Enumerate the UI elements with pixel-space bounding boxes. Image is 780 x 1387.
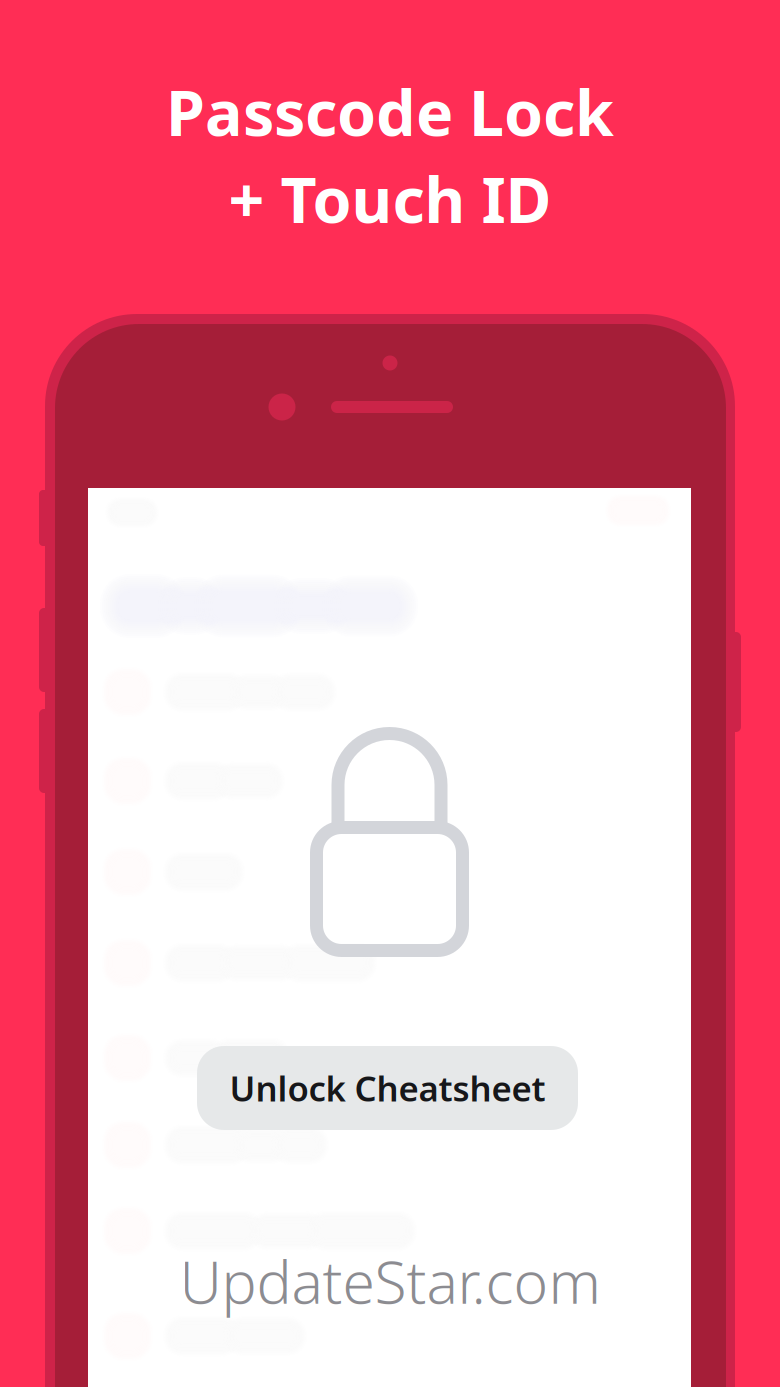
- staticText: Unlock Cheatsheet: [229, 1065, 545, 1111]
- staticText: + Touch ID: [228, 157, 551, 240]
- staticText: UpdateStar.com: [179, 1242, 600, 1320]
- staticText: Passcode Lock: [166, 70, 614, 153]
- button[interactable]: Unlock Cheatsheet: [197, 1046, 578, 1130]
